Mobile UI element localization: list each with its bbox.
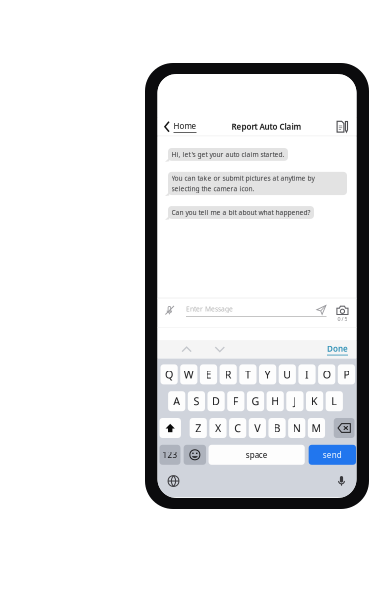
button[interactable]: D	[207, 391, 225, 411]
button[interactable]: W	[180, 364, 197, 384]
staticText: H	[271, 394, 279, 408]
staticText: T	[245, 367, 251, 381]
staticText: I	[305, 367, 309, 381]
staticText: Z	[195, 421, 201, 435]
staticText: Report Auto Claim	[231, 121, 301, 132]
button[interactable]: I	[298, 364, 316, 384]
staticText: space	[246, 449, 268, 460]
staticText: D	[212, 394, 220, 408]
staticText: Y	[265, 367, 271, 381]
staticText: You can take or submit pictures at anyti…	[171, 174, 314, 183]
staticText: F	[233, 394, 239, 408]
button[interactable]: S	[188, 391, 205, 411]
staticText: Q	[165, 367, 173, 381]
staticText: O	[323, 367, 331, 381]
button[interactable]: V	[249, 418, 266, 438]
button[interactable]: N	[288, 418, 305, 438]
staticText: W	[184, 367, 194, 381]
button[interactable]: Delete	[334, 418, 355, 438]
button[interactable]: M	[308, 418, 325, 438]
button[interactable]: Z	[190, 418, 207, 438]
staticText: G	[251, 394, 259, 408]
staticText: send	[323, 449, 342, 460]
staticText: U	[283, 367, 291, 381]
staticText: B	[274, 421, 281, 435]
button[interactable]: P	[338, 364, 355, 384]
button[interactable]: K	[306, 391, 323, 411]
button[interactable]: Emoji	[184, 445, 206, 465]
staticText: X	[215, 421, 221, 435]
staticText: Home	[173, 121, 196, 131]
button[interactable]: Claim notes	[336, 121, 348, 133]
button[interactable]: Done	[327, 343, 348, 355]
button[interactable]: Change keyboard	[167, 475, 179, 487]
button[interactable]: X	[209, 418, 227, 438]
staticText: E	[205, 367, 211, 381]
staticText: Enter Message	[186, 304, 233, 313]
staticText: A	[173, 394, 180, 408]
button[interactable]: C	[229, 418, 246, 438]
button[interactable]: L	[326, 391, 343, 411]
button[interactable]: J	[286, 391, 303, 411]
button[interactable]: G	[247, 391, 264, 411]
button[interactable]: T	[239, 364, 256, 384]
button[interactable]: O	[318, 364, 335, 384]
staticText: 0 / 5	[337, 315, 347, 323]
button[interactable]: E	[200, 364, 217, 384]
button[interactable]: Previous field	[181, 346, 192, 352]
button[interactable]: Y	[259, 364, 276, 384]
button[interactable]: A	[168, 391, 185, 411]
staticText: 123	[162, 449, 177, 460]
staticText: Can you tell me a bit about what happene…	[171, 208, 310, 217]
button[interactable]: Q	[160, 364, 178, 384]
staticText: Done	[327, 343, 348, 354]
staticText: R	[225, 367, 232, 381]
staticText: J	[293, 394, 296, 408]
staticText: M	[311, 421, 321, 435]
button[interactable]: Home	[164, 121, 196, 133]
button[interactable]: B	[268, 418, 286, 438]
staticText: L	[331, 394, 337, 408]
button[interactable]: R	[220, 364, 237, 384]
staticText: K	[311, 394, 318, 408]
button[interactable]: Dictate	[336, 475, 346, 487]
button[interactable]: send	[309, 445, 356, 465]
button[interactable]: Send	[316, 298, 326, 327]
staticText: selecting the camera icon.	[171, 184, 254, 193]
button[interactable]: F	[227, 391, 244, 411]
staticText: S	[193, 394, 199, 408]
button[interactable]: 123	[159, 445, 180, 465]
staticText: C	[234, 421, 241, 435]
button[interactable]: Shift	[159, 418, 181, 438]
button[interactable]: H	[267, 391, 284, 411]
staticText: Hi, let's get your auto claim started.	[171, 150, 284, 159]
staticText: V	[254, 421, 260, 435]
button[interactable]: Voice input off	[165, 298, 174, 327]
button[interactable]: U	[279, 364, 296, 384]
button[interactable]: space	[208, 445, 305, 465]
button[interactable]: Add photo	[336, 298, 349, 327]
staticText: P	[343, 367, 349, 381]
staticText: N	[293, 421, 301, 435]
button[interactable]: Next field	[215, 346, 225, 352]
